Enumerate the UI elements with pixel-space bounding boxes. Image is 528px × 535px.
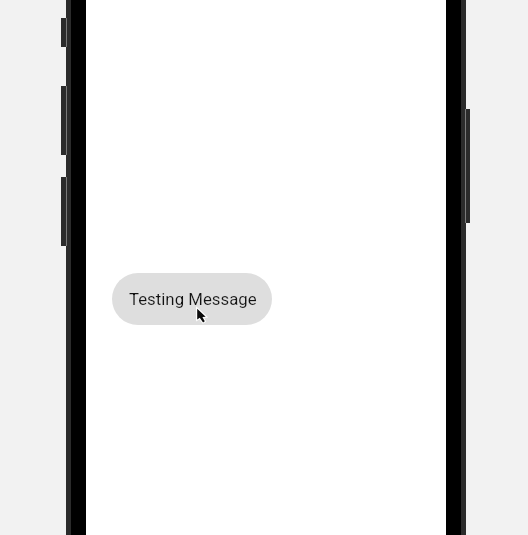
button[interactable]: Volume down [61,177,67,246]
button[interactable]: Testing Message [112,273,272,325]
button[interactable]: Power [465,109,470,223]
staticText: Testing Message [129,289,257,309]
button[interactable]: Volume up [61,86,67,155]
button[interactable]: Mute switch [61,18,67,47]
